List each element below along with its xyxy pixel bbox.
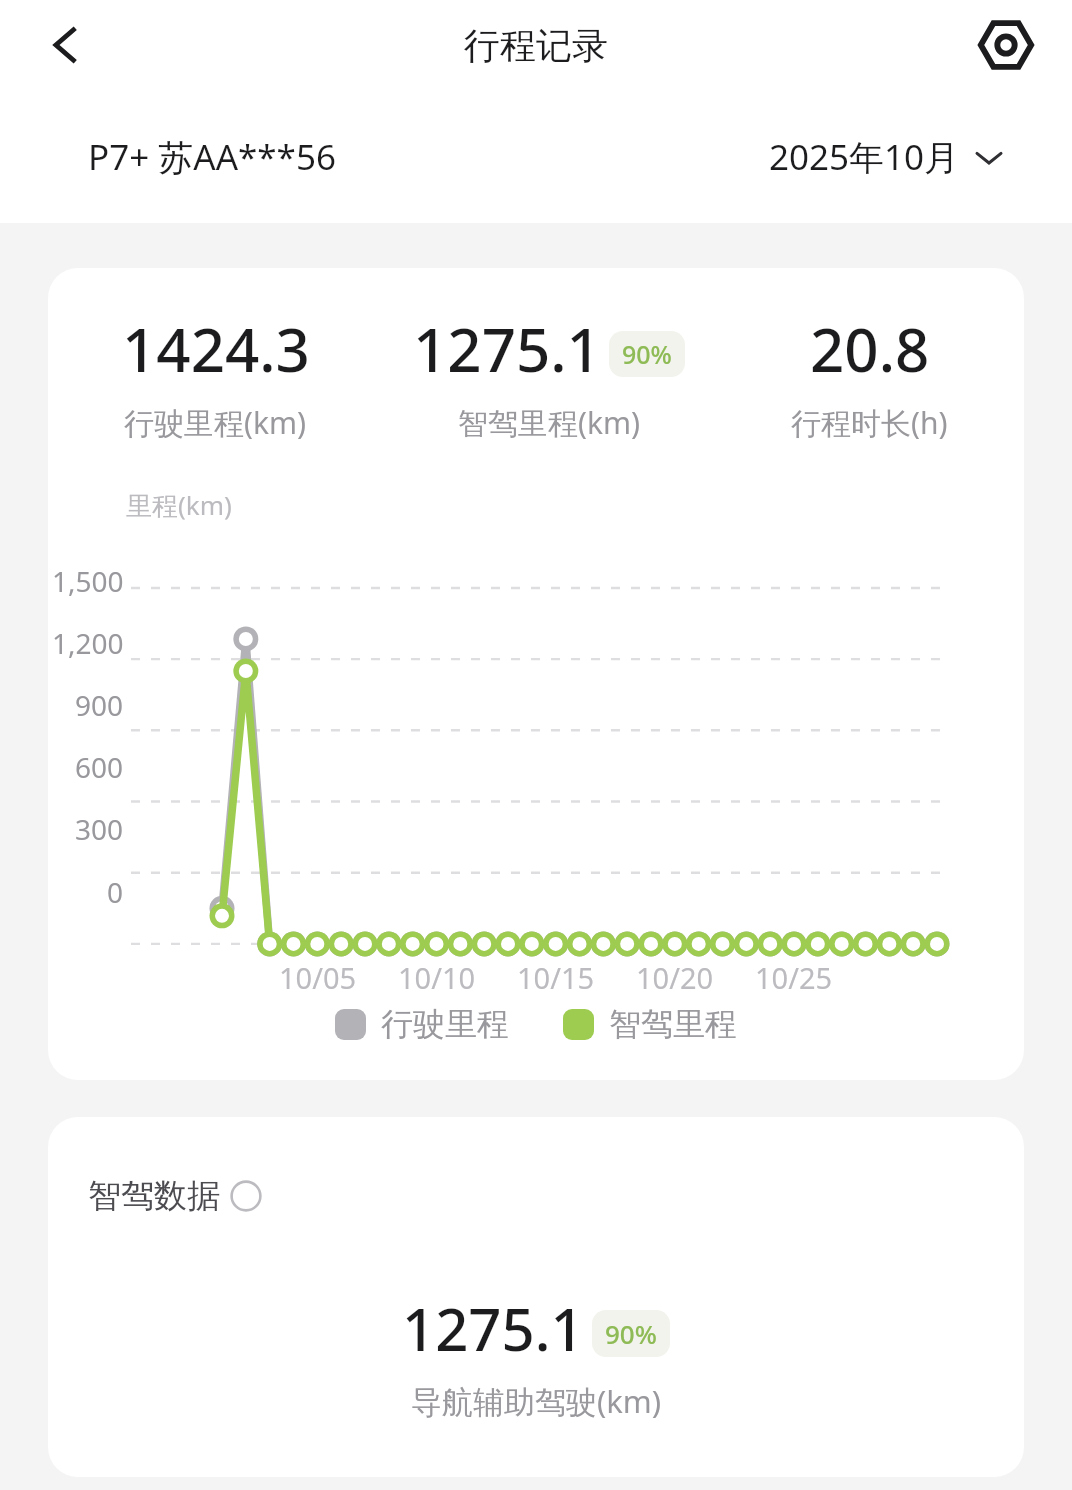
staticText: 里程(km) — [126, 487, 232, 523]
staticText: P7+ 苏AA***56 — [88, 133, 336, 181]
staticText: 10/10 — [398, 958, 476, 997]
staticText: 90% — [605, 1316, 657, 1351]
staticText: 1,500 — [52, 562, 124, 600]
staticText: 导航辅助驾驶(km) — [411, 1380, 662, 1422]
other: Info — [230, 1180, 262, 1212]
staticText: 90% — [622, 337, 672, 371]
staticText: 600 — [75, 748, 124, 786]
button[interactable]: 智驾数据 — [88, 1175, 262, 1217]
staticText: 10/20 — [636, 958, 714, 997]
staticText: 2025年10月 — [769, 133, 960, 181]
staticText: 1275.1 — [413, 308, 601, 390]
staticText: 900 — [75, 686, 124, 724]
staticText: 行程时长(h) — [791, 402, 948, 443]
staticText: 1,200 — [52, 624, 124, 662]
staticText: 10/15 — [517, 958, 595, 997]
staticText: 0 — [107, 873, 124, 911]
button[interactable]: 2025年10月 — [769, 133, 1004, 181]
staticText: 行程记录 — [464, 23, 608, 68]
staticText: 智驾里程 — [609, 1004, 737, 1044]
staticText: 智驾里程(km) — [458, 402, 641, 443]
staticText: 智驾数据 — [88, 1175, 220, 1217]
staticText: 1275.1 — [402, 1289, 584, 1368]
staticText: 行驶里程 — [381, 1004, 509, 1044]
staticText: 1424.3 — [122, 308, 310, 390]
staticText: 20.8 — [810, 308, 930, 390]
staticText: 10/05 — [279, 958, 357, 997]
staticText: 10/25 — [755, 958, 833, 997]
staticText: 300 — [75, 810, 124, 848]
button[interactable]: Settings — [968, 7, 1044, 83]
button[interactable]: Back — [30, 9, 102, 81]
staticText: 行驶里程(km) — [124, 402, 307, 443]
